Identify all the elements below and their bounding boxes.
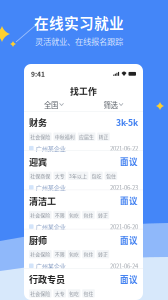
staticText: 全国 [44,99,58,110]
staticText: 应届生 [79,133,94,140]
button[interactable]: 全国 [24,99,83,110]
staticText: 广州某企业 [36,222,66,231]
staticText: 2021-06-20 [110,222,138,231]
staticText: 包吃 [69,290,79,297]
staticText: 财务 [29,116,47,129]
button[interactable]: 清洁工 [24,190,143,229]
staticText: 社会保险 [30,133,50,140]
staticText: 9:41 [31,69,45,79]
staticText: 社保商保 [30,172,50,179]
staticText: 转正 [98,251,108,258]
staticText: 包吃 [69,251,79,258]
staticText: 不限 [55,251,65,258]
staticText: 包吃 [69,211,79,218]
staticText: 广州某企业 [36,261,66,270]
button[interactable]: 财务 [24,112,143,150]
staticText: 大专 [55,290,65,297]
staticText: 中秋福利 [55,133,75,140]
staticText: 面议 [120,234,138,246]
staticText: 包住 [83,251,93,258]
staticText: 包住 [83,211,93,218]
staticText: 厨师 [29,233,47,246]
staticText: 不限 [55,211,65,218]
button[interactable]: 厨师 [24,229,143,268]
staticText: 面议 [120,155,138,168]
staticText: 2021-06-23 [110,183,138,192]
staticText: 在线实习就业 [34,12,124,33]
staticText: 3年以上 [69,172,87,179]
staticText: 筛选 [103,99,117,110]
staticText: 广州某企业 [36,183,66,192]
button[interactable]: 筛选 [83,99,143,110]
staticText: 大专 [55,172,65,179]
button[interactable]: 迎宾 [24,151,143,190]
staticText: 包吃 [91,172,101,179]
staticText: 社会保险 [30,290,50,297]
staticText: 包住 [106,172,116,179]
staticText: 社会保险 [30,211,50,218]
staticText: 2021-06-24 [110,262,138,270]
staticText: 面议 [120,273,138,285]
staticText: 社会保险 [30,251,50,258]
staticText: 清洁工 [29,194,56,207]
staticText: 转正 [98,211,108,218]
staticText: 面议 [120,195,138,207]
staticText: 迎宾 [29,155,47,168]
staticText: 灵活就业、在线报名跟踪 [35,35,123,47]
staticText: 找工作 [70,85,97,97]
staticText: 行政专员 [29,273,65,286]
button[interactable]: 行政专员 [24,269,143,300]
staticText: 2021-06-22 [110,144,138,152]
staticText: 3k-5k [116,116,138,129]
staticText: 广州某企业 [36,144,66,153]
staticText: 转正 [98,133,108,140]
staticText: 包住 [83,290,93,297]
